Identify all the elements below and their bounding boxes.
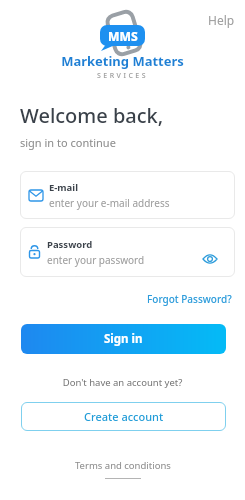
staticText: Help <box>208 12 235 28</box>
button[interactable]: E-mail <box>20 171 235 219</box>
staticText: E-mail <box>49 181 78 194</box>
staticText: SERVICES <box>0 71 245 81</box>
staticText: Don't have an account yet? <box>0 376 245 389</box>
button[interactable]: Terms and conditions <box>75 459 171 479</box>
staticText: Sign in <box>104 331 143 347</box>
staticText: sign in to continue <box>20 135 116 150</box>
staticText: Password <box>47 238 93 251</box>
button[interactable]: Password <box>20 227 235 277</box>
button[interactable]: Help <box>204 8 239 32</box>
button[interactable]: Forgot Password? <box>144 289 235 309</box>
staticText: Terms and conditions <box>75 459 171 472</box>
staticText: Forgot Password? <box>147 292 232 306</box>
staticText: enter your password <box>47 253 145 267</box>
staticText: Welcome back, <box>20 102 164 129</box>
staticText: Marketing Matters <box>0 52 245 70</box>
staticText: enter your e-mail address <box>49 196 170 210</box>
button[interactable]: Create account <box>21 402 226 431</box>
staticText: Create account <box>84 409 164 424</box>
staticText: MMS <box>108 28 138 44</box>
button[interactable]: Sign in <box>21 324 226 354</box>
